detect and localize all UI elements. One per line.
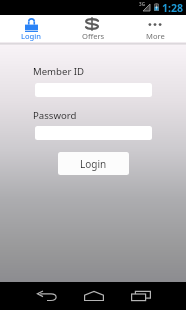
button[interactable]: Back	[24, 284, 70, 308]
staticText: 3G	[139, 1, 145, 7]
staticText: Login	[80, 157, 107, 171]
staticText: Member ID	[33, 65, 85, 78]
staticText: More	[146, 31, 165, 41]
button[interactable]: Offers	[62, 15, 124, 42]
button[interactable]: More	[124, 15, 186, 42]
staticText: Password	[33, 109, 77, 122]
button[interactable]: Login	[58, 152, 129, 175]
button[interactable]: Login	[0, 15, 62, 42]
staticText: 1:28	[162, 1, 184, 15]
staticText: Offers	[82, 31, 105, 41]
button[interactable]: Home	[71, 284, 117, 308]
button[interactable]: Recent apps	[118, 284, 164, 308]
staticText: Login	[21, 31, 41, 41]
